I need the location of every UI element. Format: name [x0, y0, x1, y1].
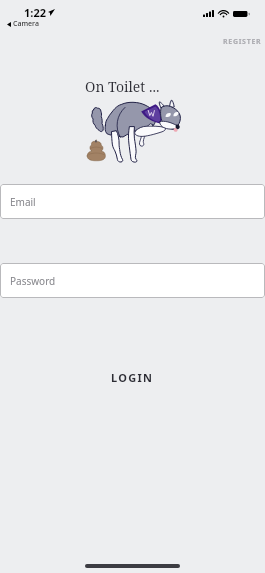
staticText: On Toilet ... — [85, 77, 160, 96]
button[interactable]: REGISTER — [215, 33, 265, 51]
staticText: Email — [10, 195, 36, 209]
staticText: Password — [10, 274, 56, 288]
staticText: 1:22 — [24, 5, 46, 20]
staticText: Camera — [13, 19, 39, 29]
staticText: REGISTER — [223, 37, 262, 47]
button[interactable]: LOGIN — [0, 362, 265, 392]
button[interactable]: Email — [0, 184, 265, 219]
button[interactable]: Password — [0, 263, 265, 298]
staticText: LOGIN — [111, 370, 154, 385]
